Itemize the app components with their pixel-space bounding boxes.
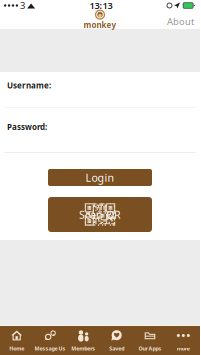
staticText: Members [71, 345, 95, 352]
staticText: Our Apps [138, 345, 161, 352]
button[interactable]: About [161, 14, 200, 28]
staticText: Home [9, 345, 24, 352]
staticText: 13:13 [90, 0, 113, 12]
button[interactable]: Home [0, 326, 33, 355]
button[interactable]: Scan QR [48, 197, 152, 232]
button[interactable]: Members [67, 326, 100, 355]
button[interactable]: Our Apps [133, 326, 167, 355]
staticText: Message Us [34, 345, 65, 352]
button[interactable]: more [167, 326, 200, 355]
button[interactable]: Login [48, 169, 152, 186]
staticText: About [167, 15, 194, 28]
staticText: Password: [7, 122, 47, 132]
button[interactable]: Saved [100, 326, 133, 355]
staticText: Login [85, 170, 114, 185]
button[interactable]: Message Us [33, 326, 67, 355]
staticText: Saved [109, 345, 124, 352]
staticText: monkey [83, 20, 116, 30]
staticText: Username: [7, 80, 51, 91]
staticText: Scan QR [79, 207, 121, 222]
staticText: more [177, 345, 190, 352]
staticText: 3 [20, 0, 25, 12]
